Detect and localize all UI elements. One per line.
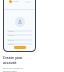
staticText: Set up your profile in a few quick steps… <box>3 67 25 72</box>
button[interactable] <box>7 34 32 36</box>
button[interactable]: Add profile photo <box>15 17 25 27</box>
staticText: Create your account <box>3 55 23 65</box>
button[interactable] <box>7 30 32 32</box>
button[interactable] <box>7 43 32 45</box>
button[interactable] <box>7 39 32 41</box>
button[interactable]: Sign up <box>14 46 26 49</box>
